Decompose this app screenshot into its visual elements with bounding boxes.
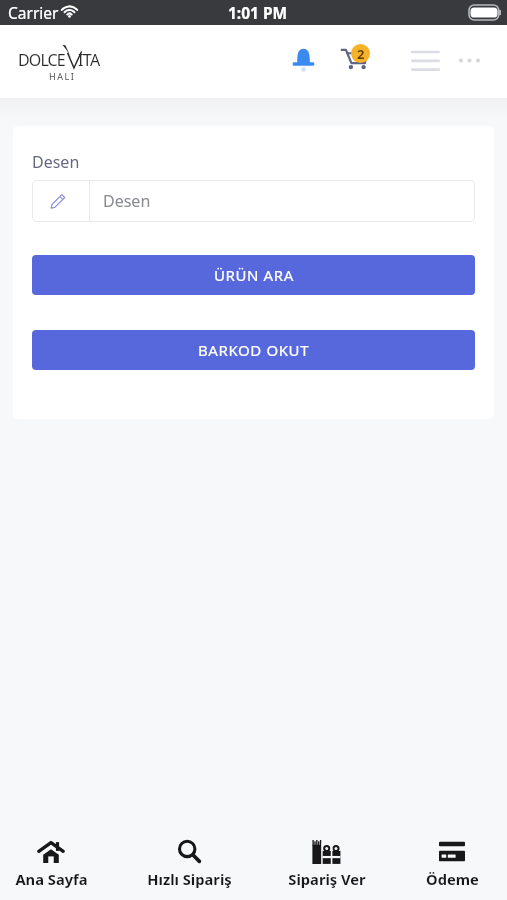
button[interactable]: Shopping cart, 2 items [333, 36, 373, 76]
staticText: DOLCE [18, 49, 65, 71]
staticText: Desen [103, 190, 151, 212]
staticText: BARKOD OKUT [198, 340, 310, 360]
staticText: Sipariş Ver [288, 869, 366, 889]
button[interactable]: Quick order [129, 828, 249, 900]
button[interactable]: Home [0, 828, 111, 900]
button[interactable]: BARKOD OKUT [32, 330, 475, 370]
staticText: 1:01 PM [228, 2, 288, 23]
staticText: Desen [32, 151, 80, 173]
button[interactable]: Desen [32, 180, 475, 222]
button[interactable]: More options [451, 44, 487, 76]
staticText: HALI [49, 70, 76, 82]
staticText: Ana Sayfa [15, 869, 88, 889]
staticText: Hızlı Sipariş [147, 869, 232, 889]
button[interactable]: Place order [267, 828, 387, 900]
staticText: Ödeme [426, 869, 479, 889]
staticText: ITA [78, 49, 100, 71]
staticText: Carrier [8, 2, 59, 23]
button[interactable]: Notifications [282, 40, 324, 82]
button[interactable]: Payment [392, 828, 507, 900]
staticText: 2 [357, 45, 365, 63]
button[interactable]: ÜRÜN ARA [32, 255, 475, 295]
button[interactable]: Menu [405, 40, 445, 80]
staticText: ÜRÜN ARA [214, 265, 294, 285]
